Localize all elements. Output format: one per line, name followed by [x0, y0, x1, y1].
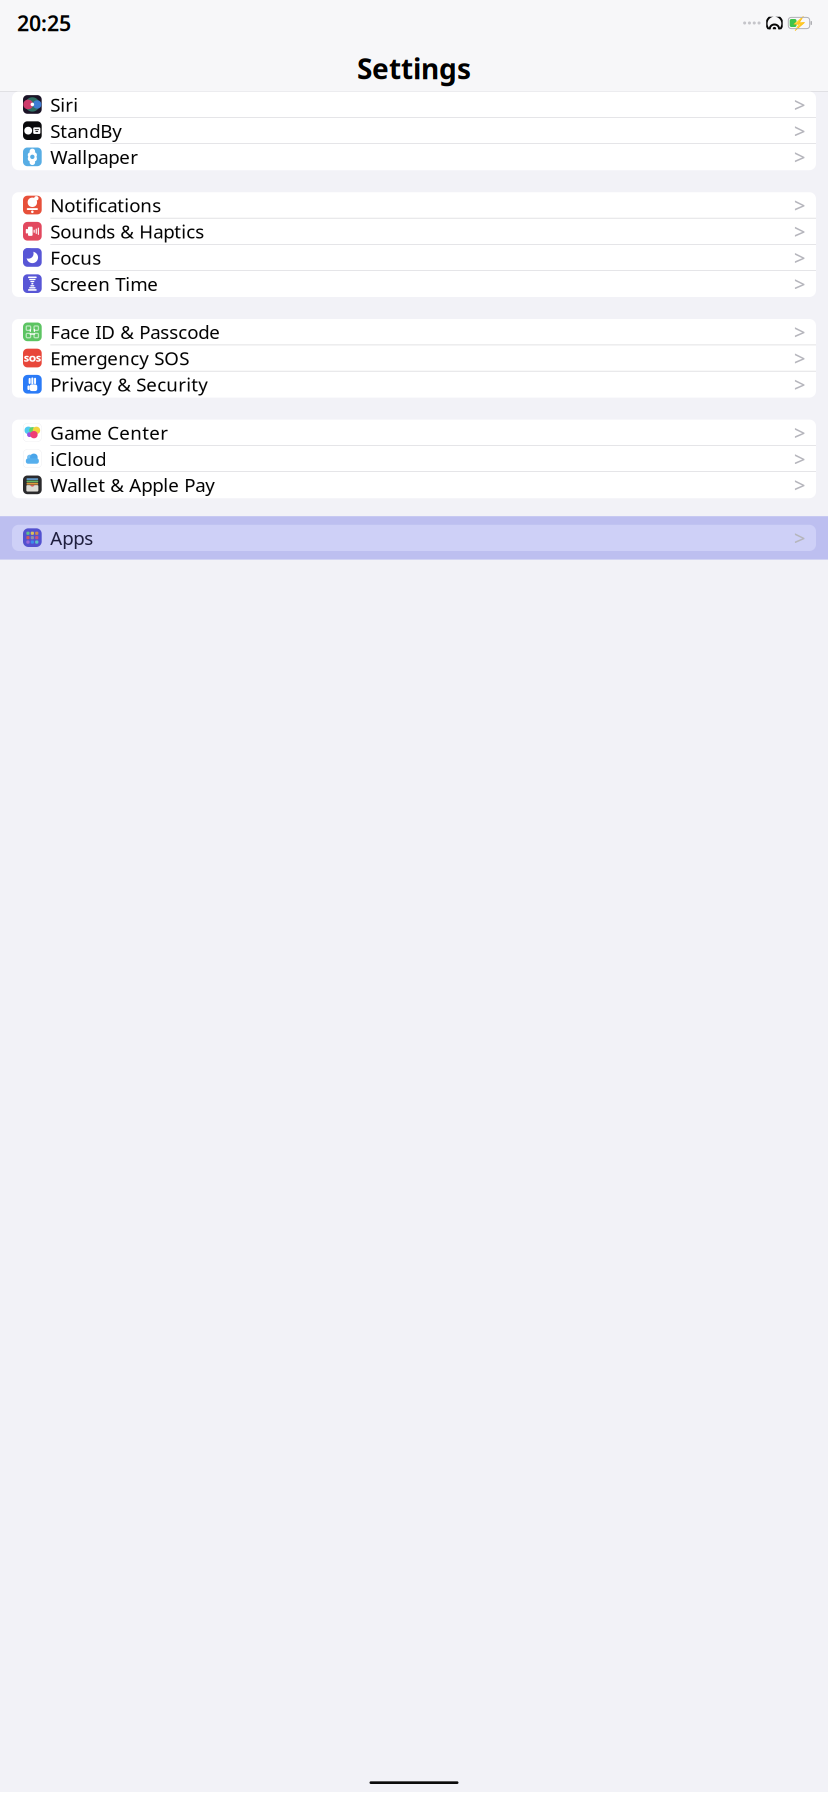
staticText: Face ID & Passcode [50, 319, 220, 344]
button[interactable]: Wallet & Apple Pay [12, 472, 816, 498]
staticText: Emergency SOS [50, 346, 189, 370]
staticText: Siri [50, 92, 78, 117]
staticText: StandBy [50, 118, 122, 143]
staticText: Sounds & Haptics [50, 219, 204, 244]
staticText: > [794, 472, 805, 498]
button[interactable]: Focus [12, 245, 816, 271]
staticText: > [794, 319, 805, 345]
staticText: > [794, 371, 805, 398]
staticText: Game Center [50, 420, 168, 445]
staticText: ⚡ [790, 15, 807, 31]
button[interactable]: iCloud [12, 446, 816, 472]
button[interactable]: Wallpaper [12, 144, 816, 170]
staticText: SOS [24, 352, 41, 364]
staticText: 20:25 [17, 9, 71, 37]
button[interactable]: Game Center [12, 420, 816, 446]
staticText: Focus [50, 245, 101, 270]
staticText: Screen Time [50, 271, 158, 296]
staticText: > [794, 270, 805, 297]
staticText: > [794, 117, 805, 144]
staticText: Wallpaper [50, 144, 138, 169]
button[interactable]: Apps [12, 525, 816, 551]
button[interactable]: Siri [12, 92, 816, 118]
staticText: Notifications [50, 193, 161, 217]
staticText: > [794, 244, 805, 271]
button[interactable]: Privacy & Security [12, 371, 816, 398]
staticText: > [794, 144, 805, 170]
staticText: iCloud [50, 446, 106, 471]
staticText: Privacy & Security [50, 372, 208, 397]
button[interactable]: SOS [12, 345, 816, 371]
staticText: Apps [50, 525, 93, 550]
button[interactable]: Sounds & Haptics [12, 218, 816, 245]
button[interactable]: Notifications [12, 192, 816, 218]
staticText: Settings [357, 50, 471, 87]
button[interactable]: Screen Time [12, 271, 816, 297]
button[interactable]: Face ID & Passcode [12, 319, 816, 345]
staticText: Wallet & Apple Pay [50, 472, 215, 497]
staticText: > [794, 192, 805, 218]
staticText: > [794, 91, 805, 118]
staticText: > [794, 218, 805, 245]
staticText: > [794, 419, 805, 446]
staticText: > [794, 445, 805, 472]
button[interactable]: StandBy [12, 118, 816, 144]
staticText: > [794, 524, 805, 551]
staticText: > [794, 345, 805, 371]
